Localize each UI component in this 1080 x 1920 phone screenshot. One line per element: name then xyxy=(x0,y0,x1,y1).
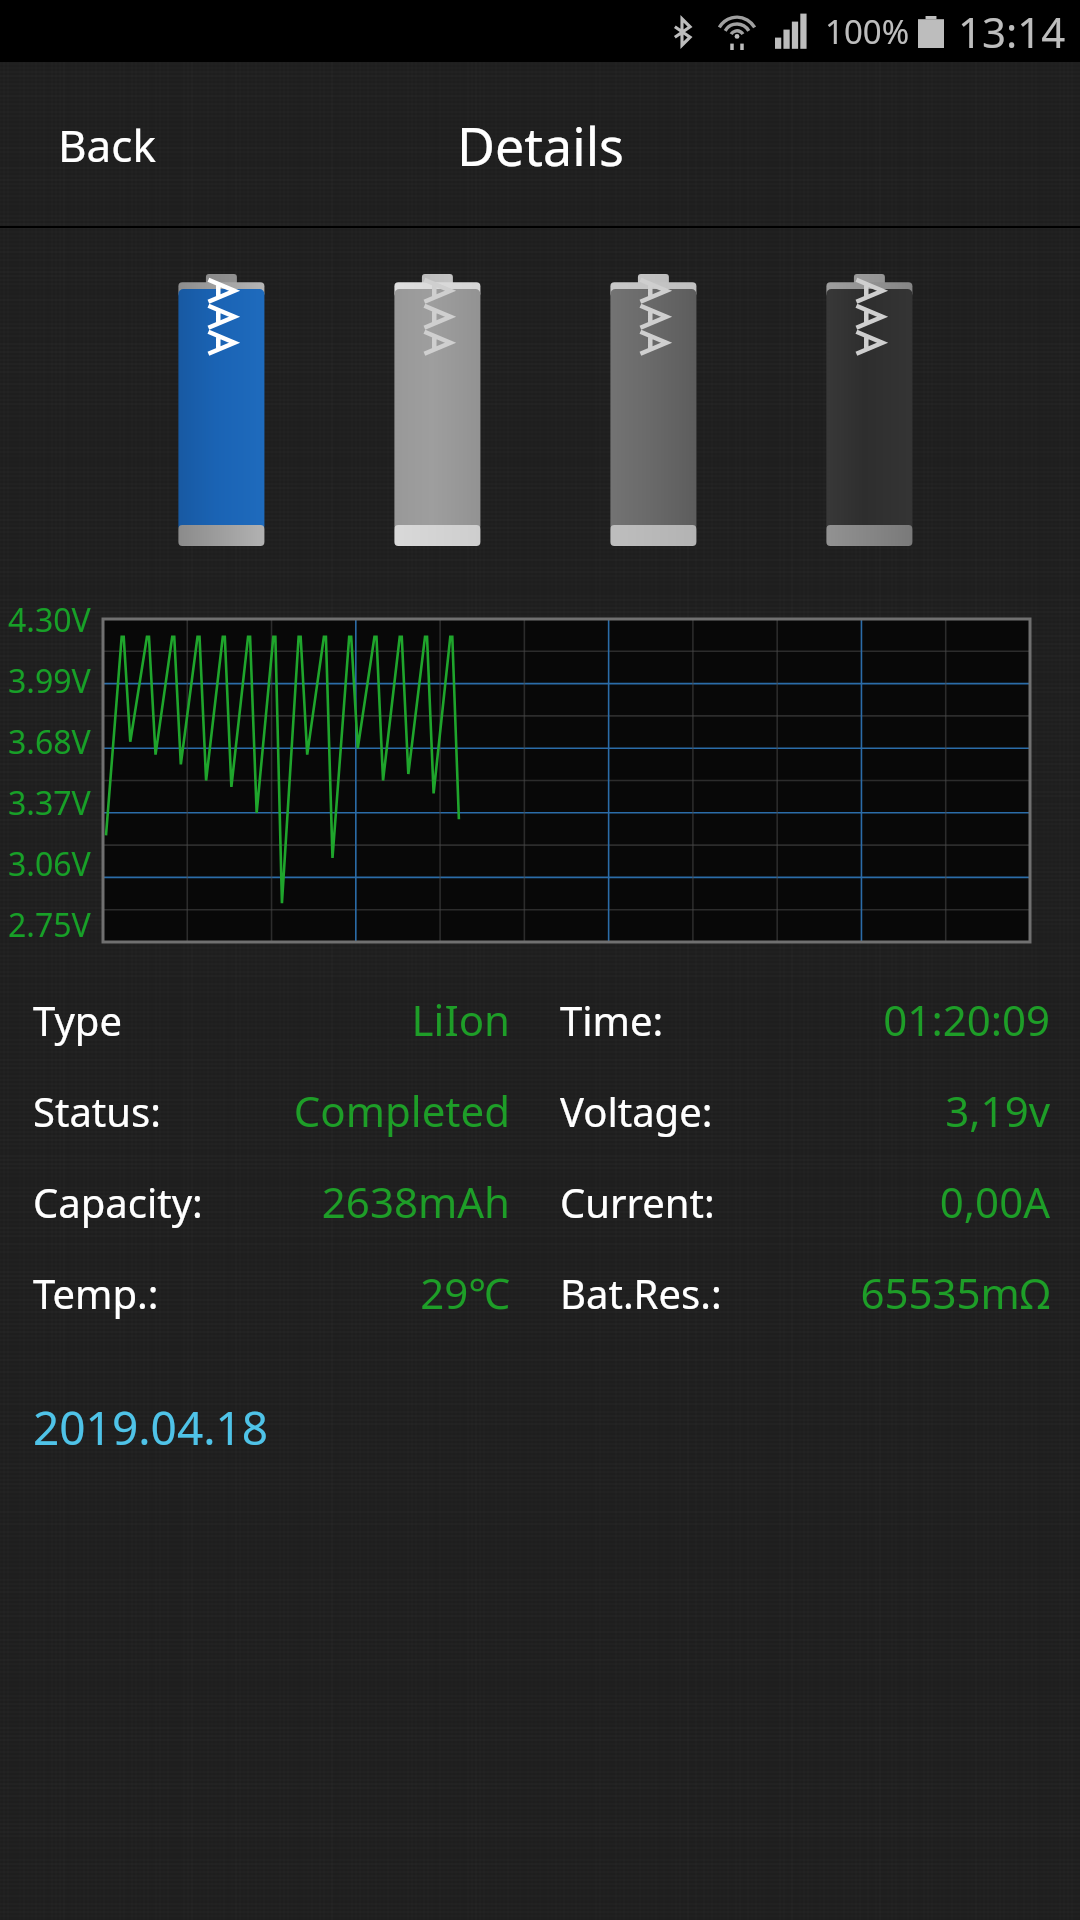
staticText: 3.68V xyxy=(8,720,91,764)
staticText: Type xyxy=(33,993,122,1047)
staticText: 3,19v xyxy=(945,1082,1050,1139)
staticText: Voltage: xyxy=(560,1084,713,1138)
staticText: 3.06V xyxy=(8,842,91,886)
staticText: 3.99V xyxy=(8,659,91,703)
staticText: 13:14 xyxy=(958,3,1066,60)
staticText: Capacity: xyxy=(33,1175,203,1229)
staticText: 2638mAh xyxy=(321,1173,510,1230)
staticText: 01:20:09 xyxy=(883,991,1050,1048)
staticText: LiIon xyxy=(411,991,510,1048)
staticText: Back xyxy=(58,115,156,175)
staticText: Temp.: xyxy=(33,1266,159,1320)
staticText: 2019.04.18 xyxy=(33,1396,269,1459)
staticText: 3.37V xyxy=(8,781,91,825)
button[interactable]: Back xyxy=(20,97,194,193)
staticText: Completed xyxy=(293,1082,510,1139)
staticText: Details xyxy=(457,110,624,181)
staticText: 100% xyxy=(825,9,910,54)
staticText: 2.75V xyxy=(8,903,91,947)
staticText: 4.30V xyxy=(8,598,91,642)
staticText: Time: xyxy=(560,993,664,1047)
staticText: 0,00A xyxy=(939,1173,1050,1230)
staticText: 65535mΩ xyxy=(860,1264,1050,1321)
staticText: Current: xyxy=(560,1175,715,1229)
staticText: Bat.Res.: xyxy=(560,1266,722,1320)
staticText: 29℃ xyxy=(420,1264,510,1321)
staticText: Status: xyxy=(33,1084,161,1138)
